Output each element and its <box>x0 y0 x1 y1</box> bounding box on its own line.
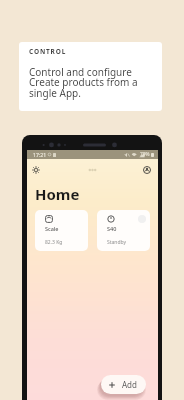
button[interactable]: Power toggle <box>138 215 146 223</box>
button[interactable]: S40 <box>97 210 150 251</box>
staticText: 17:21 <box>33 151 47 158</box>
staticText: S40 <box>107 225 117 232</box>
staticText: CONTROL <box>29 47 67 56</box>
staticText: 79% <box>140 151 150 158</box>
staticText: Scale <box>45 225 59 232</box>
staticText: 82.3 Kg <box>45 239 63 246</box>
staticText: Control and configure Create products fr… <box>29 65 138 100</box>
button[interactable]: Account <box>140 163 154 177</box>
staticText: Add <box>122 379 137 390</box>
button[interactable]: CONTROL <box>19 42 162 111</box>
button[interactable]: Add <box>101 375 146 394</box>
staticText: Standby <box>107 239 127 246</box>
button[interactable]: Settings <box>29 163 43 177</box>
staticText: Home <box>35 184 80 204</box>
button[interactable]: Scale <box>35 210 88 251</box>
